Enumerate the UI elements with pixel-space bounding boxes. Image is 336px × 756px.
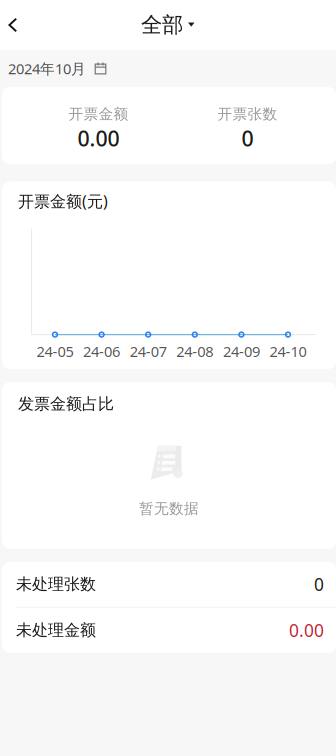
staticText: 24-06 — [83, 342, 120, 361]
staticText: 0.00 — [77, 124, 119, 152]
staticText: 2024年10月 — [8, 59, 86, 78]
staticText: 24-07 — [130, 342, 167, 361]
staticText: 开票金额 — [68, 105, 128, 123]
staticText: 0 — [241, 124, 253, 152]
staticText: 24-08 — [176, 342, 213, 361]
staticText: 24-05 — [36, 342, 73, 361]
staticText: 开票张数 — [217, 105, 277, 123]
button[interactable]: Back — [0, 2, 32, 47]
button[interactable]: 未处理金额 — [2, 608, 336, 653]
staticText: 24-09 — [223, 342, 260, 361]
staticText: 0.00 — [289, 619, 324, 642]
staticText: 全部 — [141, 12, 183, 38]
staticText: 暂无数据 — [139, 500, 199, 518]
button[interactable]: 未处理张数 — [2, 562, 336, 607]
staticText: 0 — [314, 573, 324, 596]
staticText: 发票金额占比 — [18, 394, 114, 414]
staticText: 24-10 — [269, 342, 306, 361]
staticText: 开票金额(元) — [18, 190, 108, 211]
staticText: 未处理张数 — [16, 574, 96, 594]
button[interactable]: 2024年10月 — [0, 50, 336, 87]
staticText: 未处理金额 — [16, 620, 96, 640]
